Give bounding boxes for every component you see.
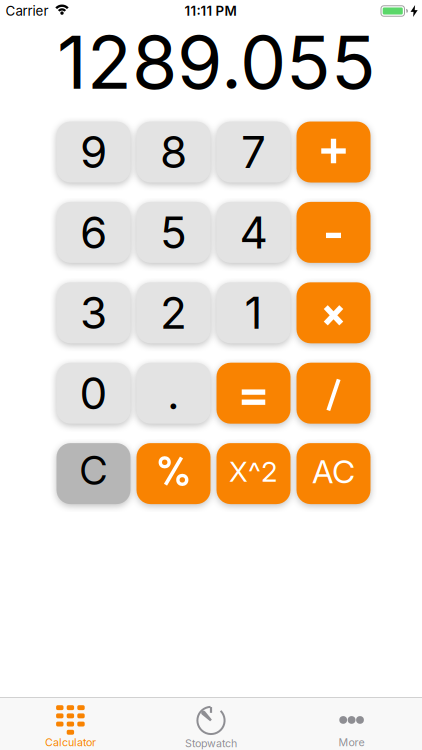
staticText: More (339, 736, 365, 749)
button[interactable]: 3 (56, 282, 130, 343)
button[interactable]: 9 (56, 121, 130, 182)
staticText: . (167, 367, 180, 419)
button[interactable] (216, 363, 290, 424)
staticText: 6 (80, 206, 107, 258)
staticText: C (79, 448, 107, 493)
staticText: 5 (160, 206, 187, 258)
button[interactable] (296, 282, 370, 343)
button[interactable]: More (281, 697, 422, 750)
button[interactable]: 5 (136, 202, 210, 263)
button[interactable]: 8 (136, 121, 210, 182)
staticText: AC (312, 453, 355, 490)
staticText: 1289.055 (57, 19, 376, 105)
staticText: 11:11 PM (185, 3, 237, 19)
staticText: 7 (241, 126, 266, 178)
button[interactable]: 7 (216, 121, 290, 182)
button[interactable]: . (136, 363, 210, 424)
staticText: Calculator (45, 736, 96, 749)
staticText: 0 (79, 367, 107, 419)
button[interactable]: Calculator (0, 697, 141, 750)
button[interactable]: 6 (56, 202, 130, 263)
button[interactable]: 2 (136, 282, 210, 343)
button[interactable]: AC (296, 443, 370, 504)
button[interactable] (296, 121, 370, 182)
staticText: Stopwatch (185, 737, 237, 750)
staticText: 9 (80, 126, 107, 178)
staticText: 8 (160, 126, 187, 178)
button[interactable]: X^2 (216, 443, 290, 504)
button[interactable]: 4 (216, 202, 290, 263)
button[interactable]: 0 (56, 363, 130, 424)
button[interactable] (136, 443, 210, 504)
staticText: 1 (244, 287, 262, 339)
button[interactable]: C (56, 443, 130, 504)
button[interactable] (296, 363, 370, 424)
staticText: Carrier (5, 3, 48, 19)
staticText: 3 (80, 287, 107, 339)
staticText: 2 (160, 287, 187, 339)
button[interactable]: 1 (216, 282, 290, 343)
button[interactable] (296, 202, 370, 263)
staticText: 4 (239, 206, 267, 258)
staticText: X^2 (229, 455, 278, 488)
button[interactable]: Stopwatch (141, 696, 281, 750)
